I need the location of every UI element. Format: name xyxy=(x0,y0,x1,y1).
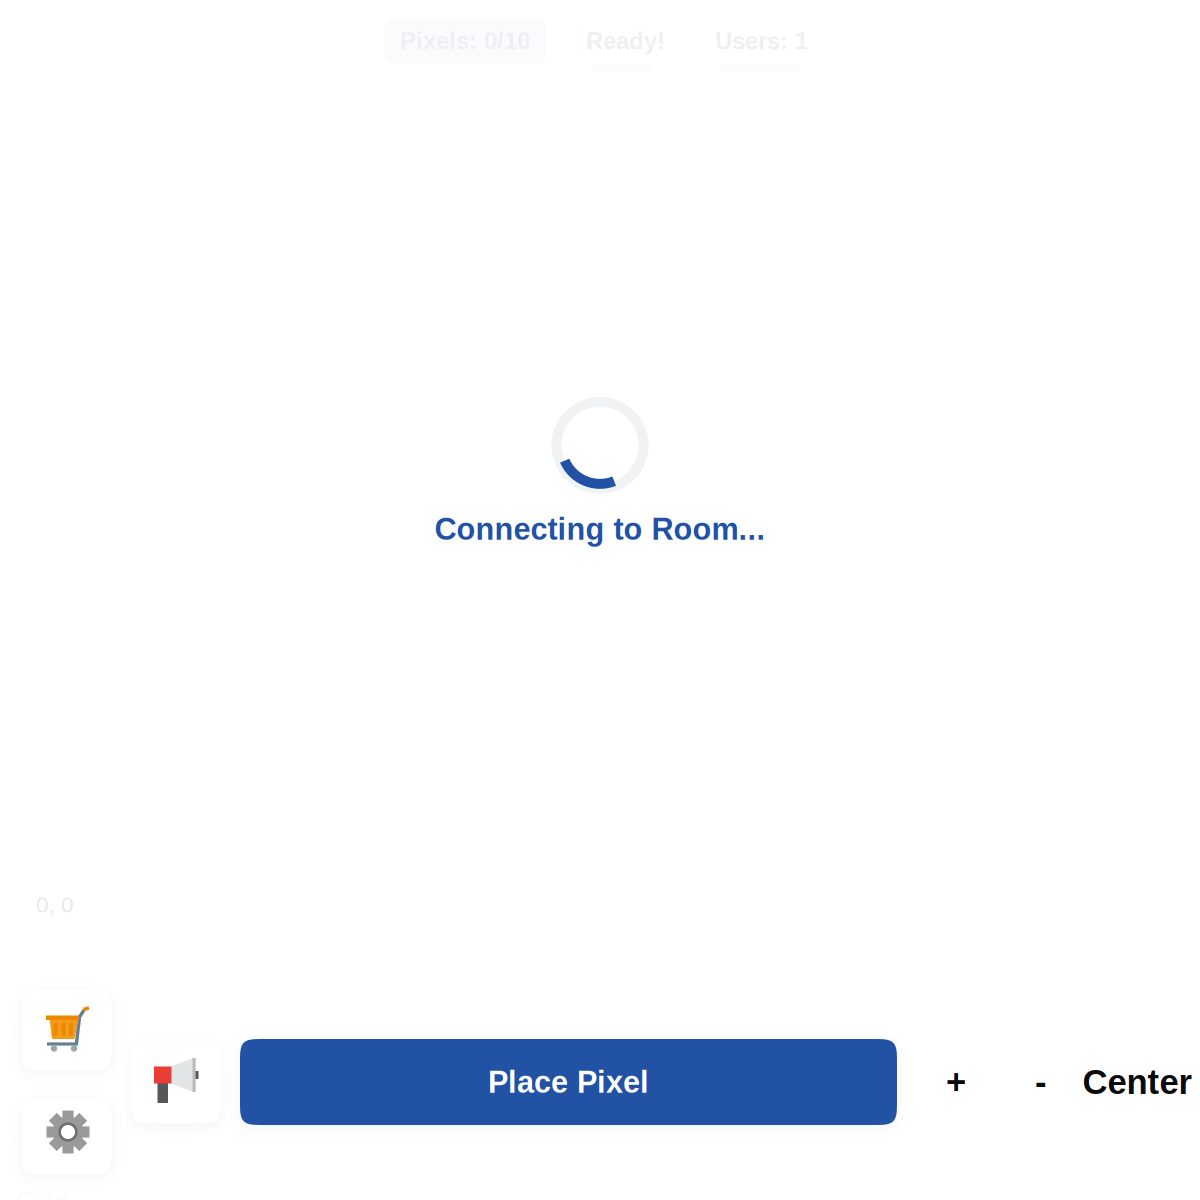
staticText: - xyxy=(1035,1063,1047,1101)
button[interactable]: Ready! xyxy=(570,18,681,64)
button[interactable]: Users: 1 xyxy=(699,18,824,64)
button[interactable]: Center xyxy=(1069,1039,1200,1125)
button[interactable]: Place Pixel xyxy=(240,1039,897,1125)
staticText: + xyxy=(946,1063,966,1101)
button[interactable]: Shop xyxy=(22,989,112,1070)
button[interactable]: - xyxy=(1013,1039,1069,1125)
button[interactable]: Settings xyxy=(22,1099,112,1174)
staticText: Ready! xyxy=(586,28,665,54)
button[interactable]: Pixels: 0/10 xyxy=(384,18,546,64)
staticText: 0, 0 xyxy=(36,892,74,917)
button[interactable]: Announcements xyxy=(131,1040,221,1123)
staticText: Place Pixel xyxy=(488,1065,649,1099)
staticText: Center xyxy=(1082,1063,1191,1101)
staticText: Connecting to Room... xyxy=(434,512,765,546)
button[interactable]: + xyxy=(911,1039,1001,1125)
staticText: Users: 1 xyxy=(715,28,808,54)
staticText: Pixels: 0/10 xyxy=(400,28,530,54)
